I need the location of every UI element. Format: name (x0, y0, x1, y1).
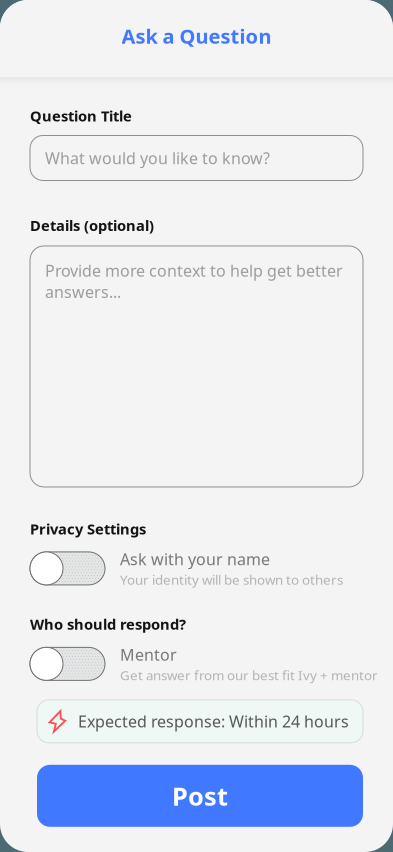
button[interactable]: Ask with your name (30, 552, 105, 585)
staticText: Your identity will be shown to others (120, 571, 343, 588)
button[interactable]: Post (37, 765, 363, 827)
staticText: Question Title (30, 106, 132, 125)
staticText: Provide more context to help get better … (45, 260, 343, 302)
staticText: Privacy Settings (30, 519, 146, 538)
staticText: What would you like to know? (45, 147, 270, 169)
staticText: Who should respond? (30, 614, 186, 634)
staticText: Details (optional) (30, 215, 154, 235)
staticText: Mentor (120, 644, 177, 665)
staticText: Ask with your name (120, 548, 270, 570)
staticText: Get answer from our best fit Ivy + mento… (120, 666, 378, 684)
button[interactable]: Mentor (30, 647, 105, 680)
staticText: Post (172, 779, 228, 813)
staticText: Ask a Question (121, 23, 271, 49)
staticText: Expected response: Within 24 hours (78, 711, 349, 732)
